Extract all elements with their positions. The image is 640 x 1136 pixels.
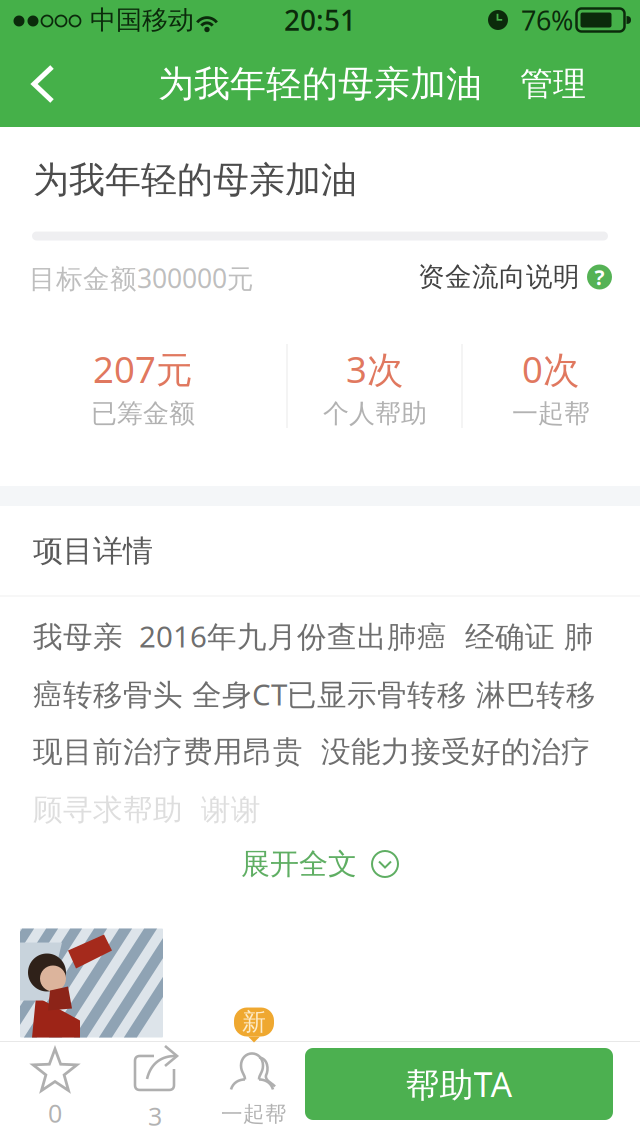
button[interactable]: 分享 3 xyxy=(105,1043,205,1133)
staticText: 3 xyxy=(148,1099,162,1133)
staticText: 为我年轻的母亲加油 xyxy=(158,61,482,107)
staticText: 0次 xyxy=(522,344,580,394)
staticText: 目标金额300000元 xyxy=(29,260,254,296)
staticText: 207元 xyxy=(93,344,193,394)
button[interactable]: 展开全文 xyxy=(160,836,480,892)
staticText: 中国移动 xyxy=(90,4,194,36)
staticText: 3次 xyxy=(346,344,404,394)
button[interactable]: 返回 xyxy=(0,40,86,127)
staticText: 管理 xyxy=(520,63,586,105)
button[interactable]: 资金流向说明 xyxy=(332,251,612,303)
button[interactable]: 一起帮 xyxy=(199,1043,309,1133)
staticText: 顾寻求帮助 谢谢 xyxy=(33,791,261,829)
staticText: 0 xyxy=(48,1096,62,1130)
staticText: 20:51 xyxy=(284,1,356,39)
button[interactable]: 收藏 0 xyxy=(5,1044,105,1134)
staticText: 我母亲 2016年九月份查出肺癌 经确证 肺 xyxy=(33,616,594,656)
button[interactable]: 管理 xyxy=(498,40,608,127)
staticText: 展开全文 xyxy=(241,846,357,882)
staticText: 新 xyxy=(242,1007,266,1037)
staticText: 已筹金额 xyxy=(91,397,195,430)
staticText: ? xyxy=(594,263,604,291)
staticText: 现目前治疗费用昂贵 没能力接受好的治疗 xyxy=(33,733,591,771)
staticText: 76% xyxy=(521,2,573,38)
staticText: 为我年轻的母亲加油 xyxy=(33,157,357,203)
staticText: 资金流向说明 xyxy=(418,260,580,294)
staticText: 癌转移骨头 全身CT已显示骨转移 淋巴转移 xyxy=(33,674,596,714)
button[interactable]: 帮助TA xyxy=(305,1048,613,1120)
staticText: 个人帮助 xyxy=(323,397,427,430)
staticText: 帮助TA xyxy=(405,1061,512,1107)
staticText: 一起帮 xyxy=(512,397,590,430)
staticText: 项目详情 xyxy=(33,532,153,570)
staticText: 一起帮 xyxy=(221,1100,287,1128)
